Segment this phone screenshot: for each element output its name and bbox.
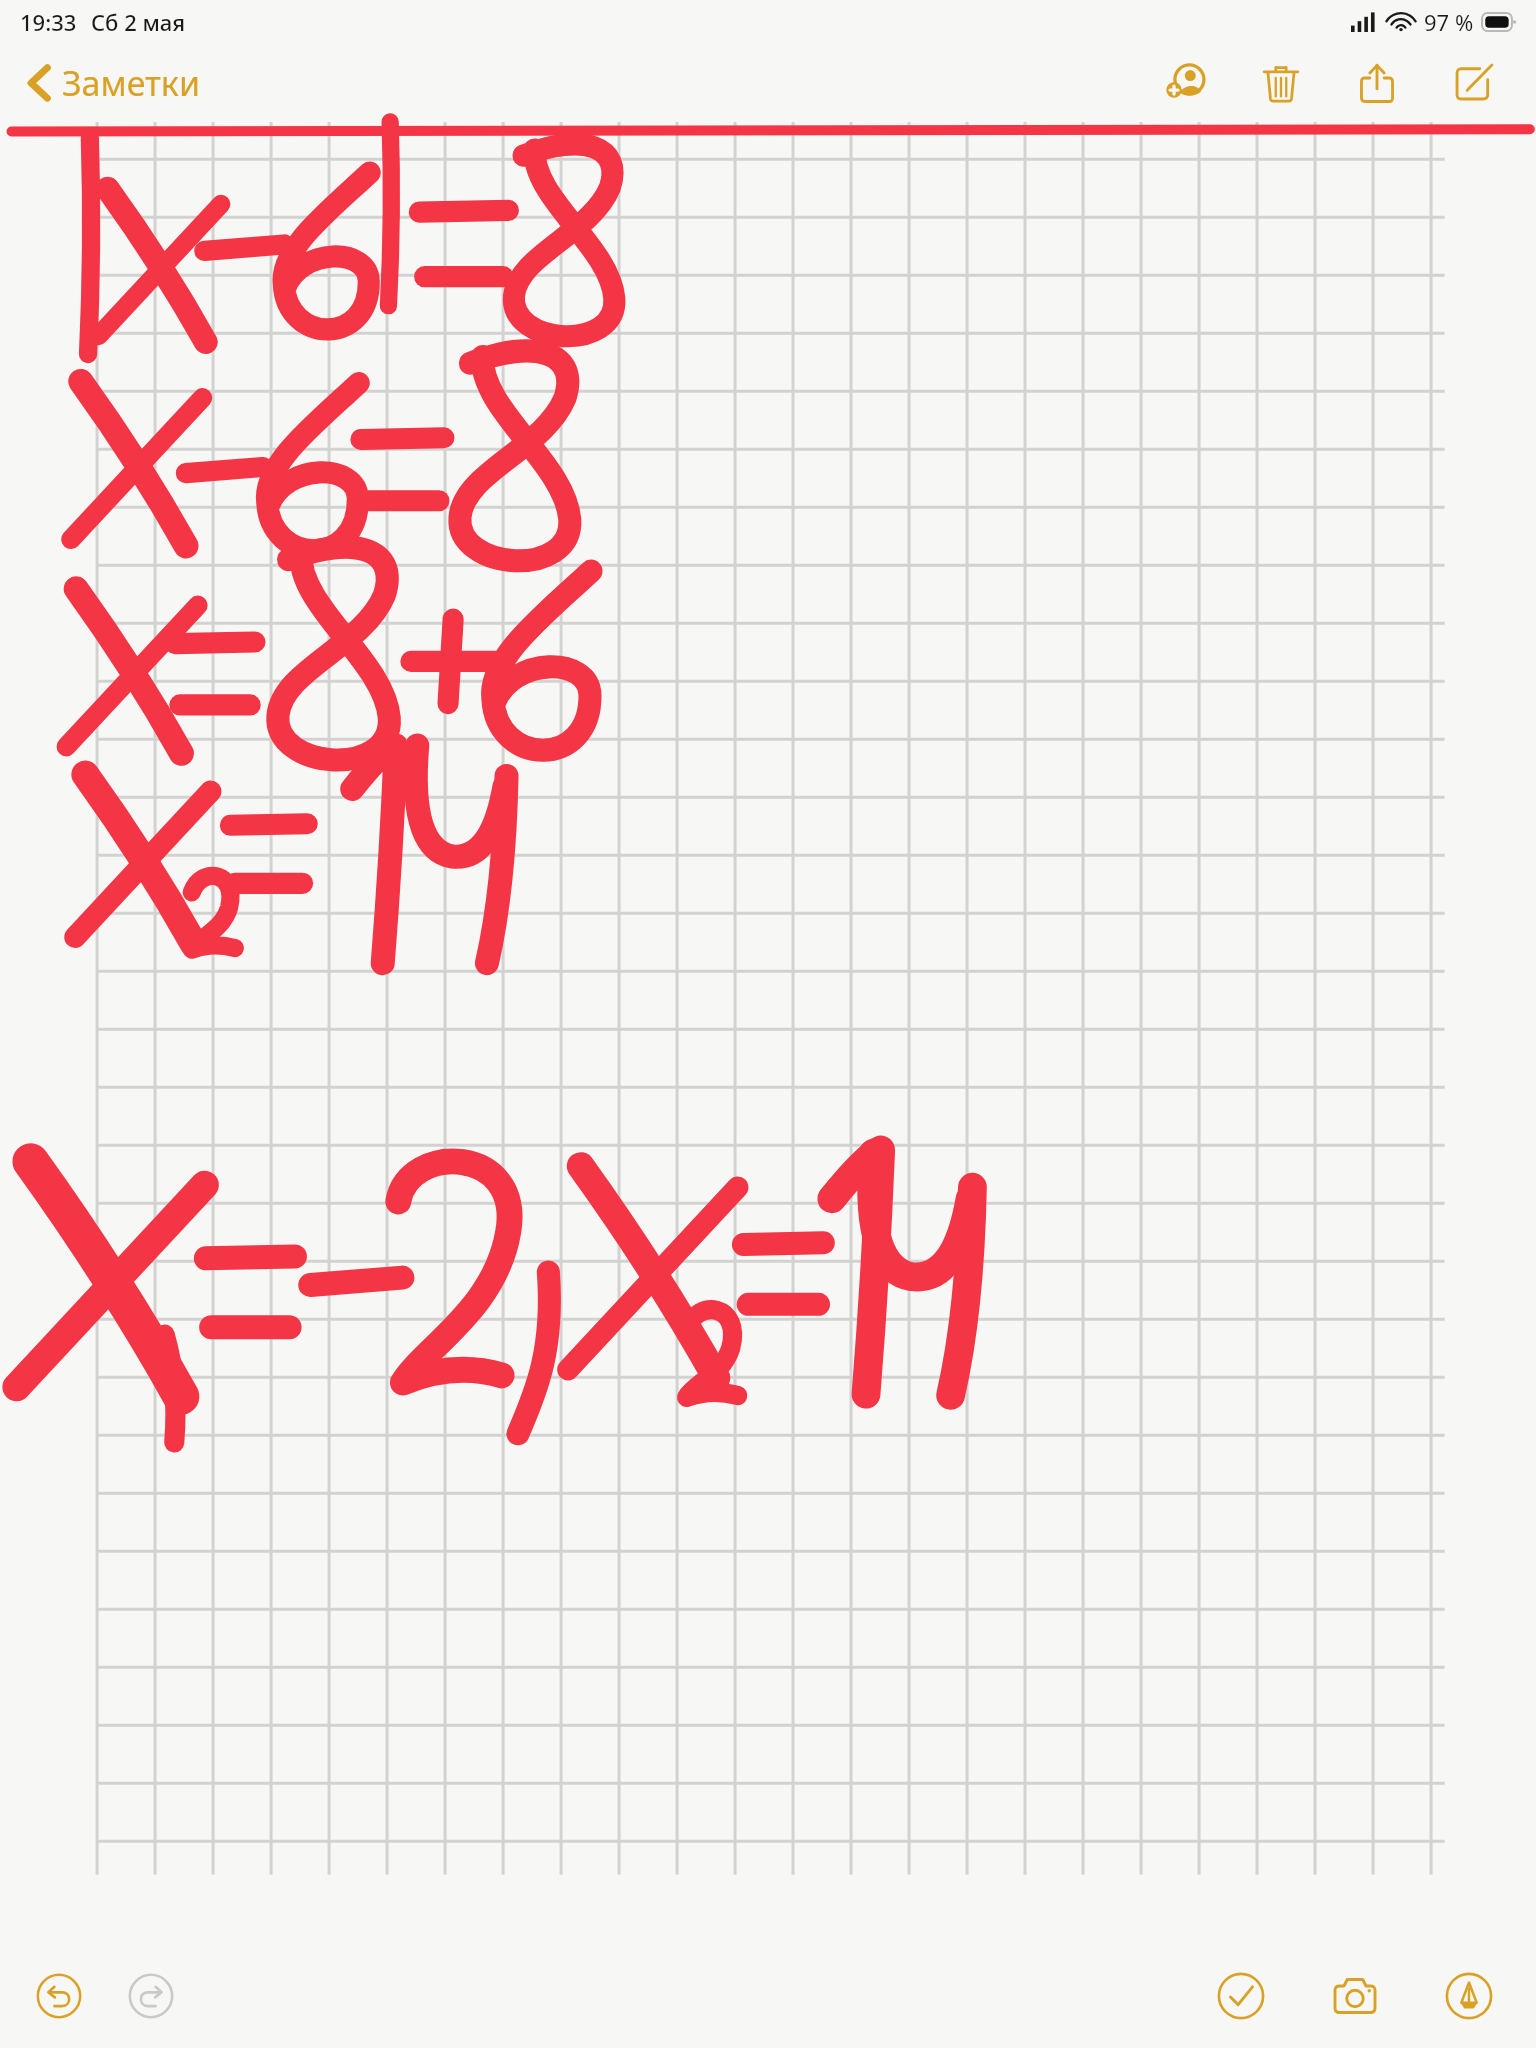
button[interactable]: Markup xyxy=(1432,1959,1506,2033)
button[interactable]: Done xyxy=(1204,1959,1278,2033)
button[interactable]: Delete xyxy=(1244,46,1318,120)
button[interactable]: Redo xyxy=(114,1959,188,2033)
staticText: Сб 2 мая xyxy=(91,7,186,37)
button[interactable]: Camera xyxy=(1318,1959,1392,2033)
button[interactable]: Заметки xyxy=(0,52,219,114)
staticText: Заметки xyxy=(62,60,201,106)
button[interactable]: Undo xyxy=(22,1959,96,2033)
button[interactable]: Share xyxy=(1340,46,1414,120)
staticText: 97 % xyxy=(1424,7,1474,37)
button[interactable]: Add People xyxy=(1148,46,1222,120)
button[interactable]: Compose xyxy=(1436,46,1510,120)
staticText: 19:33 xyxy=(20,7,77,37)
